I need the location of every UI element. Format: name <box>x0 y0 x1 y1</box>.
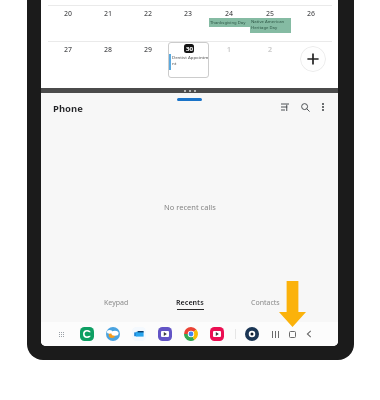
staticText: 2 <box>268 45 273 55</box>
staticText: 21 <box>104 9 113 19</box>
staticText: 22 <box>144 9 153 19</box>
button[interactable]: Sort <box>278 100 292 114</box>
staticText: Keypad <box>104 298 129 308</box>
button[interactable]: Search <box>298 100 312 114</box>
button[interactable]: All apps <box>55 328 67 340</box>
staticText: Dentist Appointme <box>172 54 209 60</box>
button[interactable]: Keypad <box>93 298 139 316</box>
staticText: 25 <box>266 9 275 19</box>
staticText: Thanksgiving Day <box>210 20 246 26</box>
button[interactable]: Back <box>303 328 315 340</box>
staticText: 27 <box>64 45 73 55</box>
staticText: Recents <box>176 298 204 308</box>
button[interactable]: Home <box>286 328 298 340</box>
button[interactable]: Native American Heritage Day <box>250 18 291 33</box>
button[interactable]: More options <box>316 100 330 114</box>
staticText: 20 <box>64 9 73 19</box>
button[interactable]: Create event <box>300 46 326 72</box>
button[interactable]: Phone <box>80 327 94 341</box>
staticText: 1 <box>227 45 232 55</box>
staticText: 26 <box>307 9 316 19</box>
button[interactable]: Camera app <box>132 327 146 341</box>
button[interactable]: Contacts <box>242 298 288 316</box>
button[interactable]: YouTube <box>210 327 224 341</box>
staticText: 3 <box>309 45 314 55</box>
staticText: 30 <box>186 45 193 53</box>
button[interactable]: 30 <box>168 42 209 78</box>
staticText: Phone <box>53 102 83 115</box>
button[interactable]: Weather <box>106 327 120 341</box>
button[interactable]: Recent apps <box>269 328 281 340</box>
button[interactable]: Thanksgiving Day <box>209 18 250 27</box>
staticText: 24 <box>225 9 234 19</box>
staticText: 23 <box>184 9 193 19</box>
button[interactable]: Camera <box>245 327 259 341</box>
staticText: 28 <box>104 45 113 55</box>
staticText: nt <box>172 60 177 66</box>
button[interactable]: Chrome <box>184 327 198 341</box>
staticText: Native American Heritage Day <box>251 19 290 31</box>
button[interactable]: Google TV <box>158 327 172 341</box>
staticText: 29 <box>144 45 153 55</box>
button[interactable]: Recents <box>167 298 213 316</box>
staticText: No recent calls <box>164 202 216 212</box>
staticText: Contacts <box>251 298 280 308</box>
